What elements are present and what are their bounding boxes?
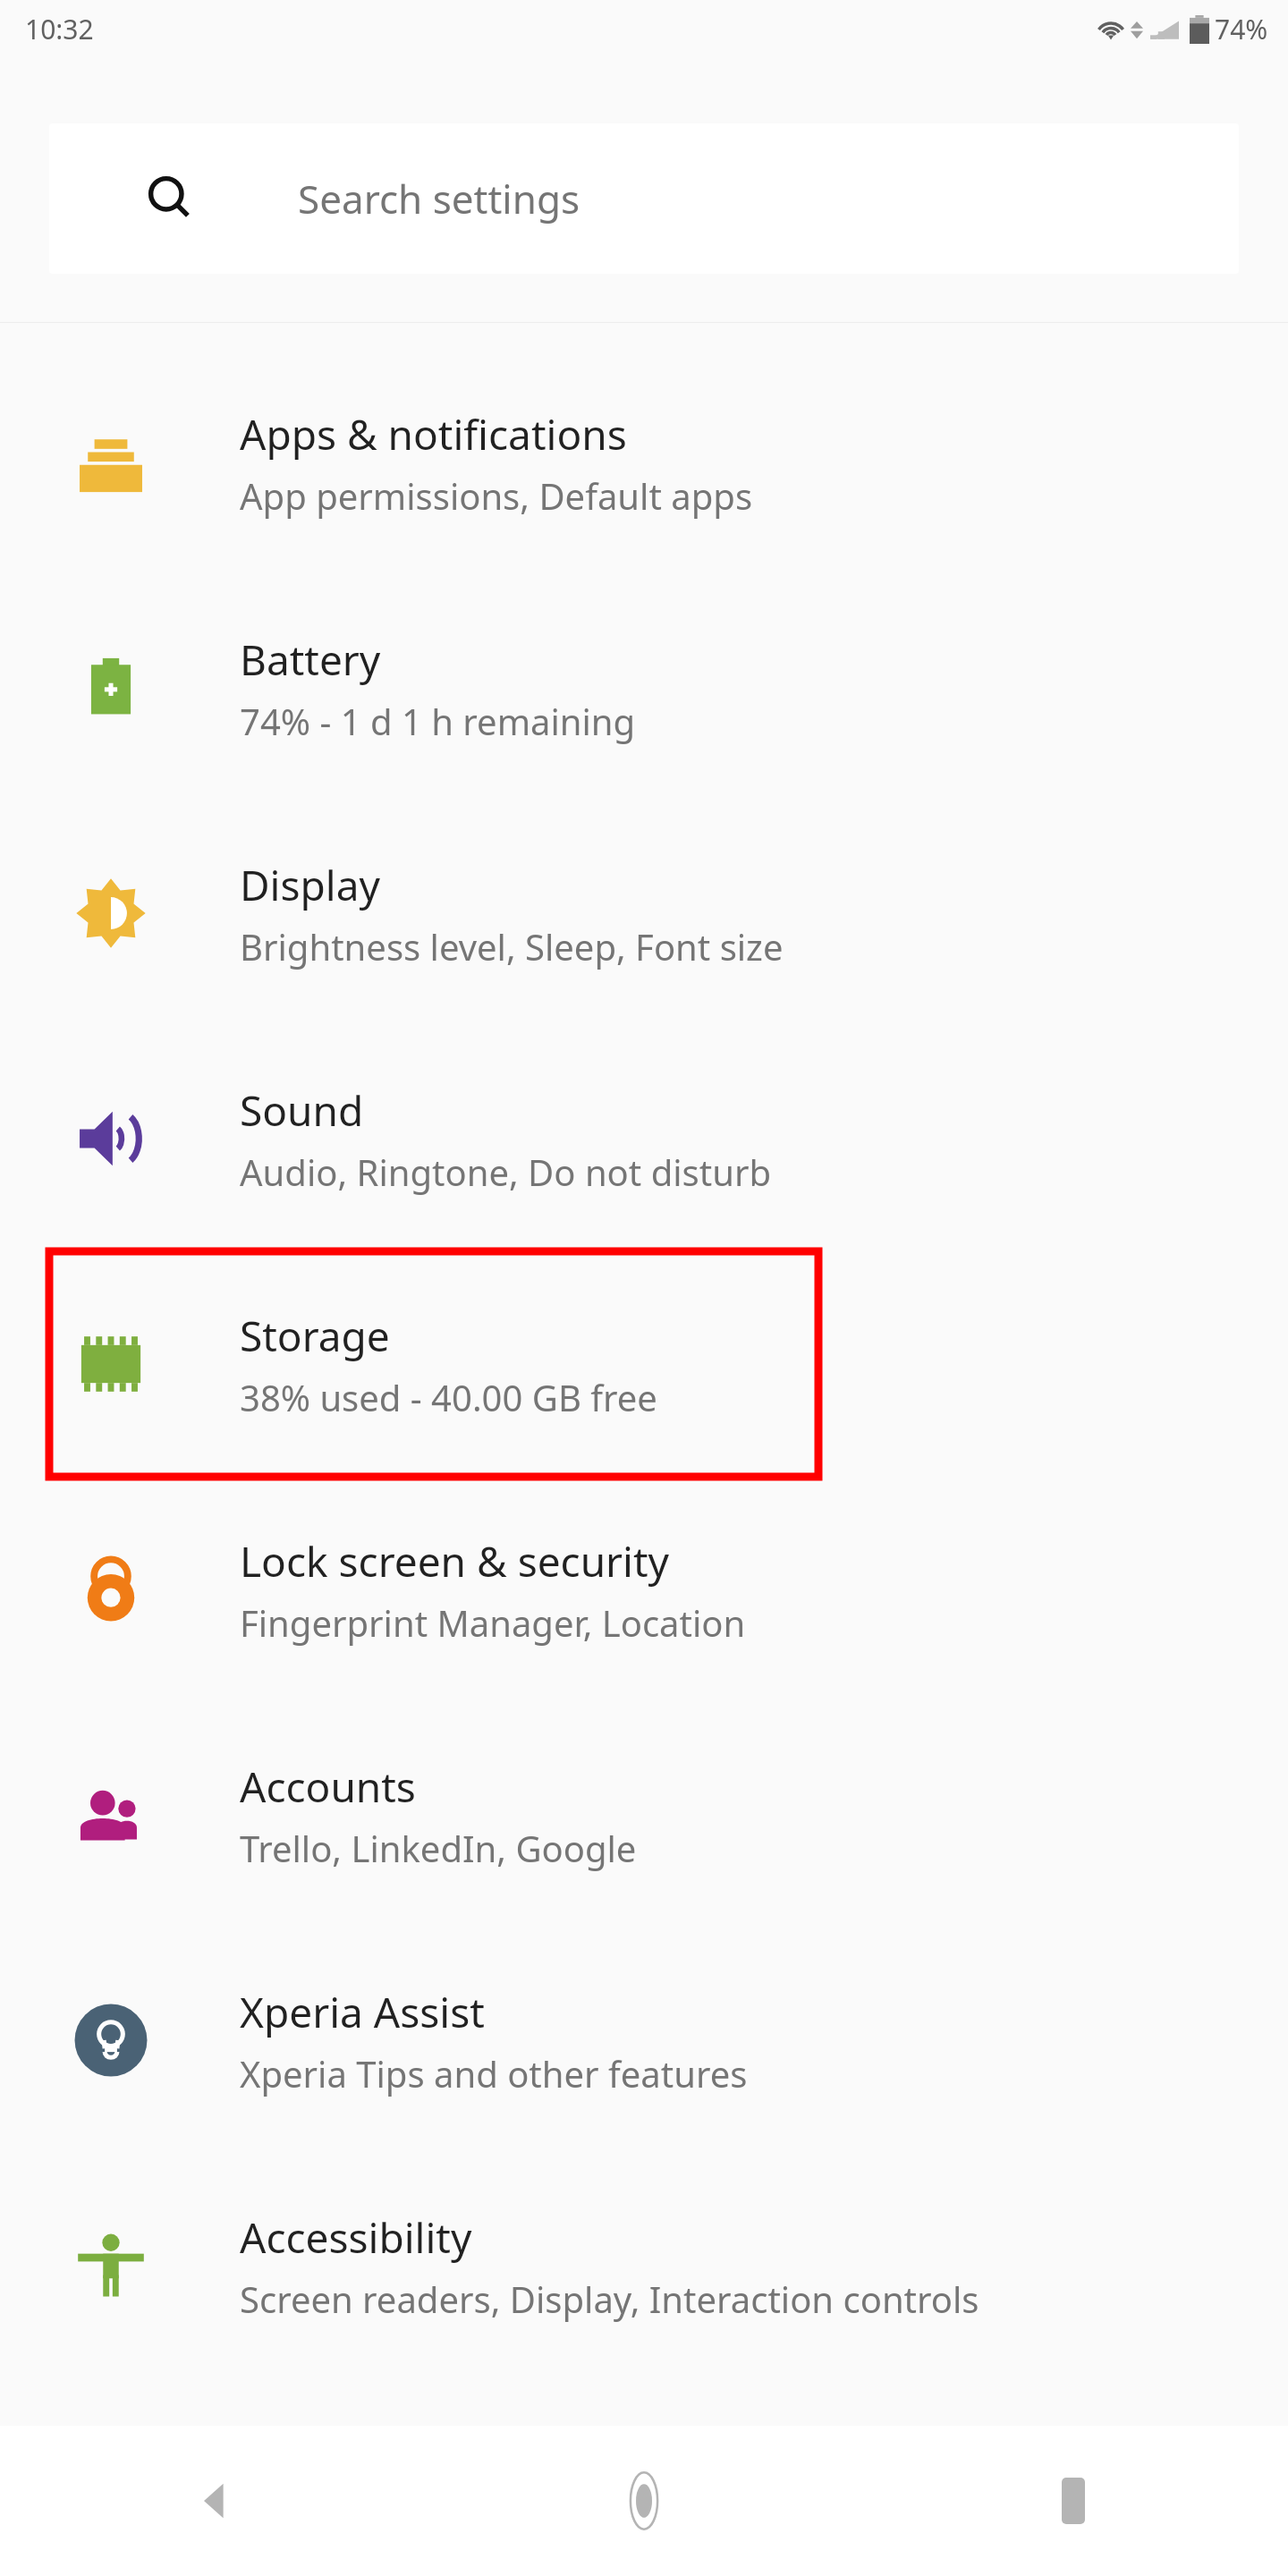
button[interactable]: Battery bbox=[0, 575, 1288, 801]
button[interactable]: Display bbox=[0, 801, 1288, 1026]
staticText: Sound bbox=[240, 1082, 364, 1139]
staticText: 74% bbox=[1215, 11, 1268, 47]
button[interactable]: Accessibility bbox=[0, 2153, 1288, 2378]
staticText: Accounts bbox=[240, 1758, 416, 1815]
staticText: Lock screen & security bbox=[240, 1533, 670, 1589]
staticText: Display bbox=[240, 857, 380, 913]
staticText: Accessibility bbox=[240, 2209, 472, 2266]
staticText: Fingerprint Manager, Location bbox=[240, 1598, 746, 1647]
staticText: Trello, LinkedIn, Google bbox=[240, 1824, 637, 1872]
staticText: Xperia Assist bbox=[240, 1984, 485, 2040]
staticText: 74% - 1 d 1 h remaining bbox=[240, 697, 636, 745]
button[interactable]: Accounts bbox=[0, 1702, 1288, 1928]
button[interactable]: Recent apps bbox=[859, 2426, 1288, 2576]
button[interactable]: Home bbox=[429, 2426, 859, 2576]
staticText: Audio, Ringtone, Do not disturb bbox=[240, 1148, 771, 1196]
staticText: Search settings bbox=[298, 172, 580, 225]
staticText: Storage bbox=[240, 1308, 390, 1364]
button[interactable]: Apps & notifications bbox=[0, 350, 1288, 575]
other: Search bbox=[148, 175, 194, 222]
button[interactable]: Storage bbox=[0, 1251, 1288, 1477]
staticText: Brightness level, Sleep, Font size bbox=[240, 922, 784, 970]
staticText: App permissions, Default apps bbox=[240, 471, 753, 520]
staticText: Battery bbox=[240, 631, 381, 688]
button[interactable]: Lock screen & security bbox=[0, 1477, 1288, 1702]
staticText: 10:32 bbox=[25, 11, 94, 47]
button[interactable]: Sound bbox=[0, 1026, 1288, 1251]
button[interactable]: Back bbox=[0, 2426, 429, 2576]
button[interactable]: Xperia Assist bbox=[0, 1928, 1288, 2153]
staticText: 38% used - 40.00 GB free bbox=[240, 1373, 657, 1421]
staticText: Apps & notifications bbox=[240, 406, 627, 462]
button[interactable]: Search bbox=[49, 123, 1239, 274]
staticText: Xperia Tips and other features bbox=[240, 2049, 748, 2097]
staticText: Screen readers, Display, Interaction con… bbox=[240, 2275, 979, 2323]
